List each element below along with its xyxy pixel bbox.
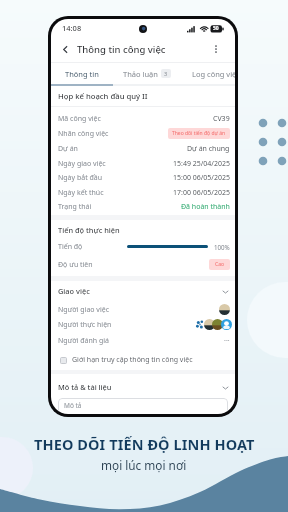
- staticText: Trạng thái: [58, 202, 92, 212]
- staticText: 14:08: [62, 23, 82, 33]
- staticText: Dự án chung: [187, 144, 230, 154]
- staticText: 15:49 25/04/2025: [173, 159, 230, 169]
- staticText: Người thực hiện: [58, 320, 112, 330]
- button[interactable]: Giao việc: [58, 282, 229, 300]
- staticText: Cao: [215, 261, 224, 268]
- staticText: 3: [164, 70, 168, 77]
- staticText: Tiến độ thực hiện: [58, 225, 120, 235]
- button[interactable]: Người giao việc: [58, 302, 230, 317]
- staticText: Mô tả: [64, 401, 82, 410]
- staticText: Dự án: [58, 144, 78, 154]
- staticText: Log công việc: [192, 69, 235, 79]
- staticText: 50: [213, 25, 219, 32]
- button[interactable]: Ngày kết thúc: [58, 185, 230, 200]
- staticText: Người đánh giá: [58, 336, 110, 346]
- staticText: Độ ưu tiên: [58, 260, 93, 270]
- button[interactable]: Giới hạn truy cập thông tin công việc: [60, 351, 230, 369]
- staticText: Giao việc: [58, 286, 90, 296]
- staticText: CV39: [213, 114, 230, 124]
- button[interactable]: Thông tin: [51, 63, 113, 84]
- button[interactable]: Trạng thái: [58, 199, 230, 214]
- staticText: Ngày bắt đầu: [58, 173, 103, 183]
- button[interactable]: Thảo luận: [113, 63, 180, 84]
- staticText: mọi lúc mọi nơi: [101, 457, 187, 473]
- staticText: 100%: [214, 243, 230, 251]
- button[interactable]: Dự án: [58, 141, 230, 156]
- staticText: Mã công việc: [58, 114, 101, 124]
- staticText: Giới hạn truy cập thông tin công việc: [72, 355, 193, 365]
- button[interactable]: Log công việc: [180, 63, 234, 84]
- staticText: Theo dõi tiến độ dự án: [172, 130, 226, 137]
- staticText: Ngày giao việc: [58, 159, 106, 169]
- staticText: 15:00 06/05/2025: [173, 173, 230, 183]
- staticText: ···: [224, 336, 230, 346]
- button[interactable]: Độ ưu tiên: [58, 257, 230, 272]
- staticText: THEO DÕI TIẾN ĐỘ LINH HOẠT: [34, 434, 255, 454]
- staticText: Thảo luận: [123, 69, 158, 79]
- staticText: 17:00 06/05/2025: [173, 188, 230, 198]
- staticText: Họp kế hoạch đầu quý II: [58, 91, 148, 101]
- staticText: Thông tin công việc: [77, 43, 166, 56]
- staticText: Tiến độ: [58, 242, 83, 252]
- button[interactable]: More options: [208, 41, 224, 57]
- button[interactable]: Ngày bắt đầu: [58, 170, 230, 185]
- button[interactable]: Người thực hiện: [58, 317, 232, 332]
- staticText: Người giao việc: [58, 305, 110, 315]
- staticText: Ngày kết thúc: [58, 188, 104, 198]
- button[interactable]: Back: [57, 41, 73, 57]
- button[interactable]: Mô tả & tài liệu: [58, 378, 229, 396]
- staticText: Thông tin: [65, 69, 99, 79]
- button[interactable]: Người đánh giá: [58, 333, 230, 348]
- button[interactable]: Mã công việc: [58, 111, 230, 126]
- button[interactable]: Ngày giao việc: [58, 156, 230, 171]
- button[interactable]: Nhãn công việc: [58, 126, 230, 141]
- staticText: Đã hoàn thành: [181, 202, 230, 212]
- staticText: Nhãn công việc: [58, 129, 109, 139]
- staticText: Mô tả & tài liệu: [58, 382, 112, 392]
